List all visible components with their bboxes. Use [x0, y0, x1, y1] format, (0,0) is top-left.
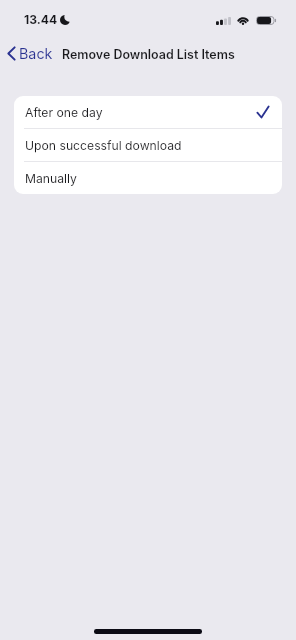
button[interactable]: Manually — [14, 162, 282, 194]
staticText: Back — [19, 45, 53, 62]
staticText: 13.44 — [24, 12, 58, 27]
other: Selected — [257, 106, 269, 118]
staticText: Remove Download List Items — [62, 47, 235, 62]
button[interactable]: Upon successful download — [14, 129, 282, 161]
button[interactable]: Back — [0, 41, 60, 66]
staticText: After one day — [25, 105, 103, 120]
button[interactable]: After one day — [14, 96, 282, 128]
staticText: Manually — [25, 171, 77, 186]
staticText: Upon successful download — [25, 138, 182, 153]
